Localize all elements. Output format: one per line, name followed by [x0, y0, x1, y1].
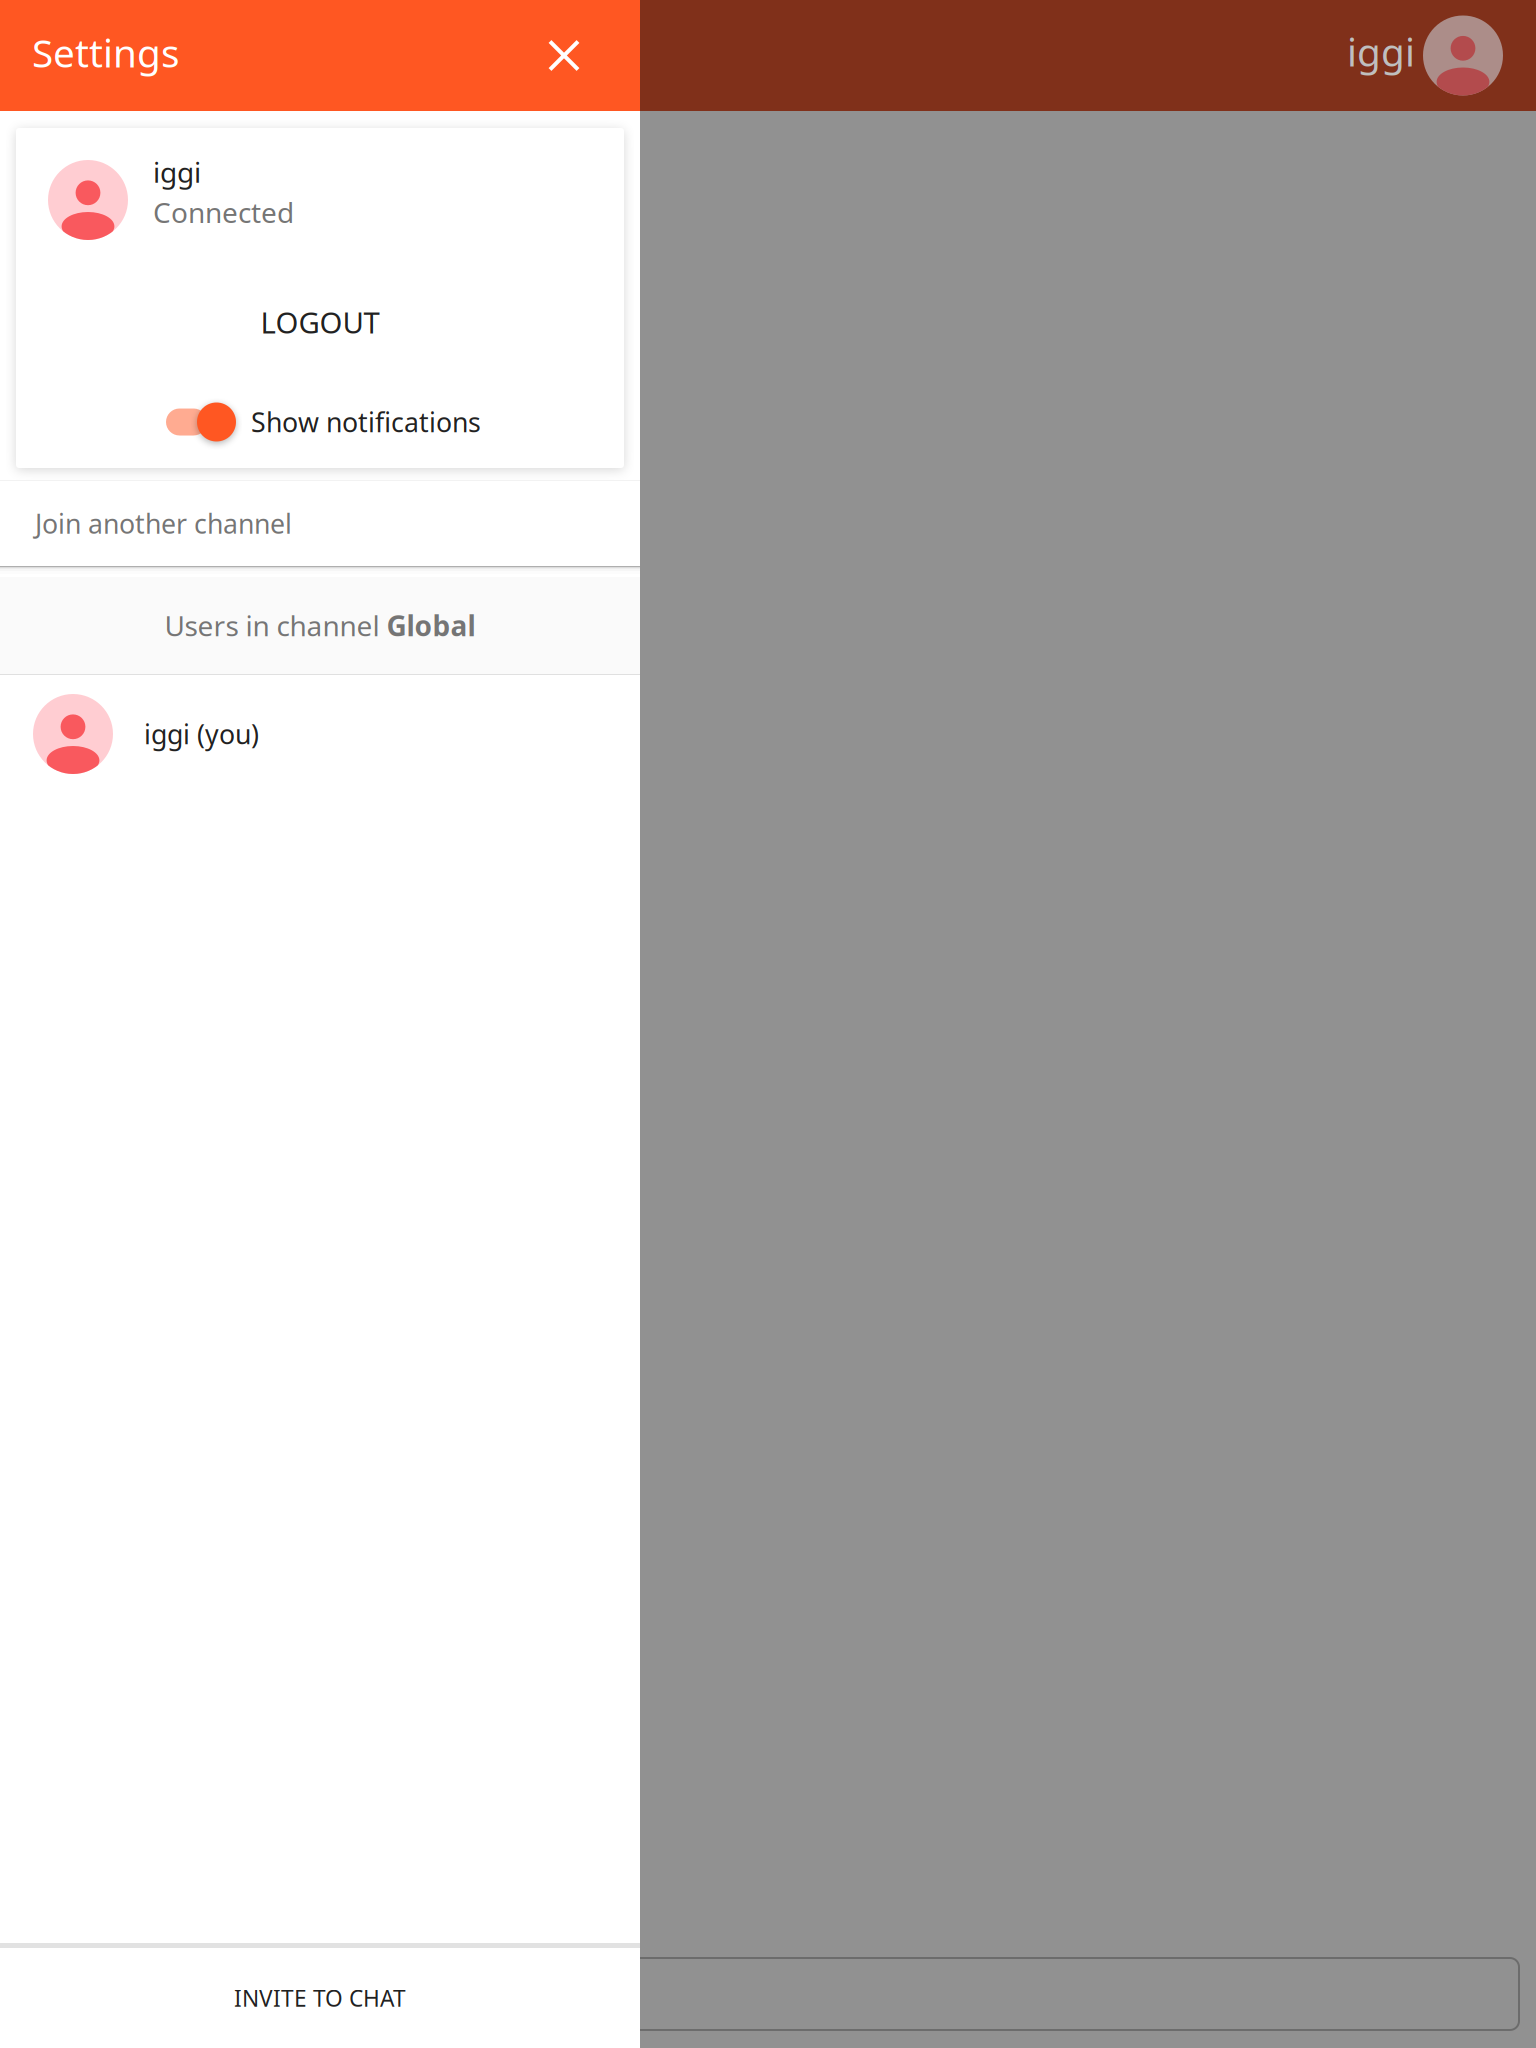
- staticText: iggi: [1347, 25, 1415, 78]
- staticText: Global: [386, 606, 475, 644]
- staticText: Show notifications: [251, 404, 481, 440]
- staticText: iggi (you): [144, 716, 259, 752]
- staticText: iggi: [153, 153, 201, 191]
- staticText: LOGOUT: [260, 302, 379, 342]
- button[interactable]: LOGOUT: [16, 296, 624, 348]
- button[interactable]: Close settings: [526, 17, 602, 93]
- staticText: Settings: [32, 26, 180, 79]
- staticText: Join another channel: [35, 505, 292, 542]
- button[interactable]: Show notifications: [16, 398, 624, 446]
- button[interactable]: iggi (you): [0, 675, 640, 793]
- staticText: INVITE TO CHAT: [234, 1983, 406, 2013]
- staticText: Users in channel: [164, 606, 386, 644]
- button[interactable]: Join another channel: [0, 481, 640, 566]
- staticText: Connected: [153, 193, 294, 231]
- button[interactable]: INVITE TO CHAT: [0, 1948, 640, 2048]
